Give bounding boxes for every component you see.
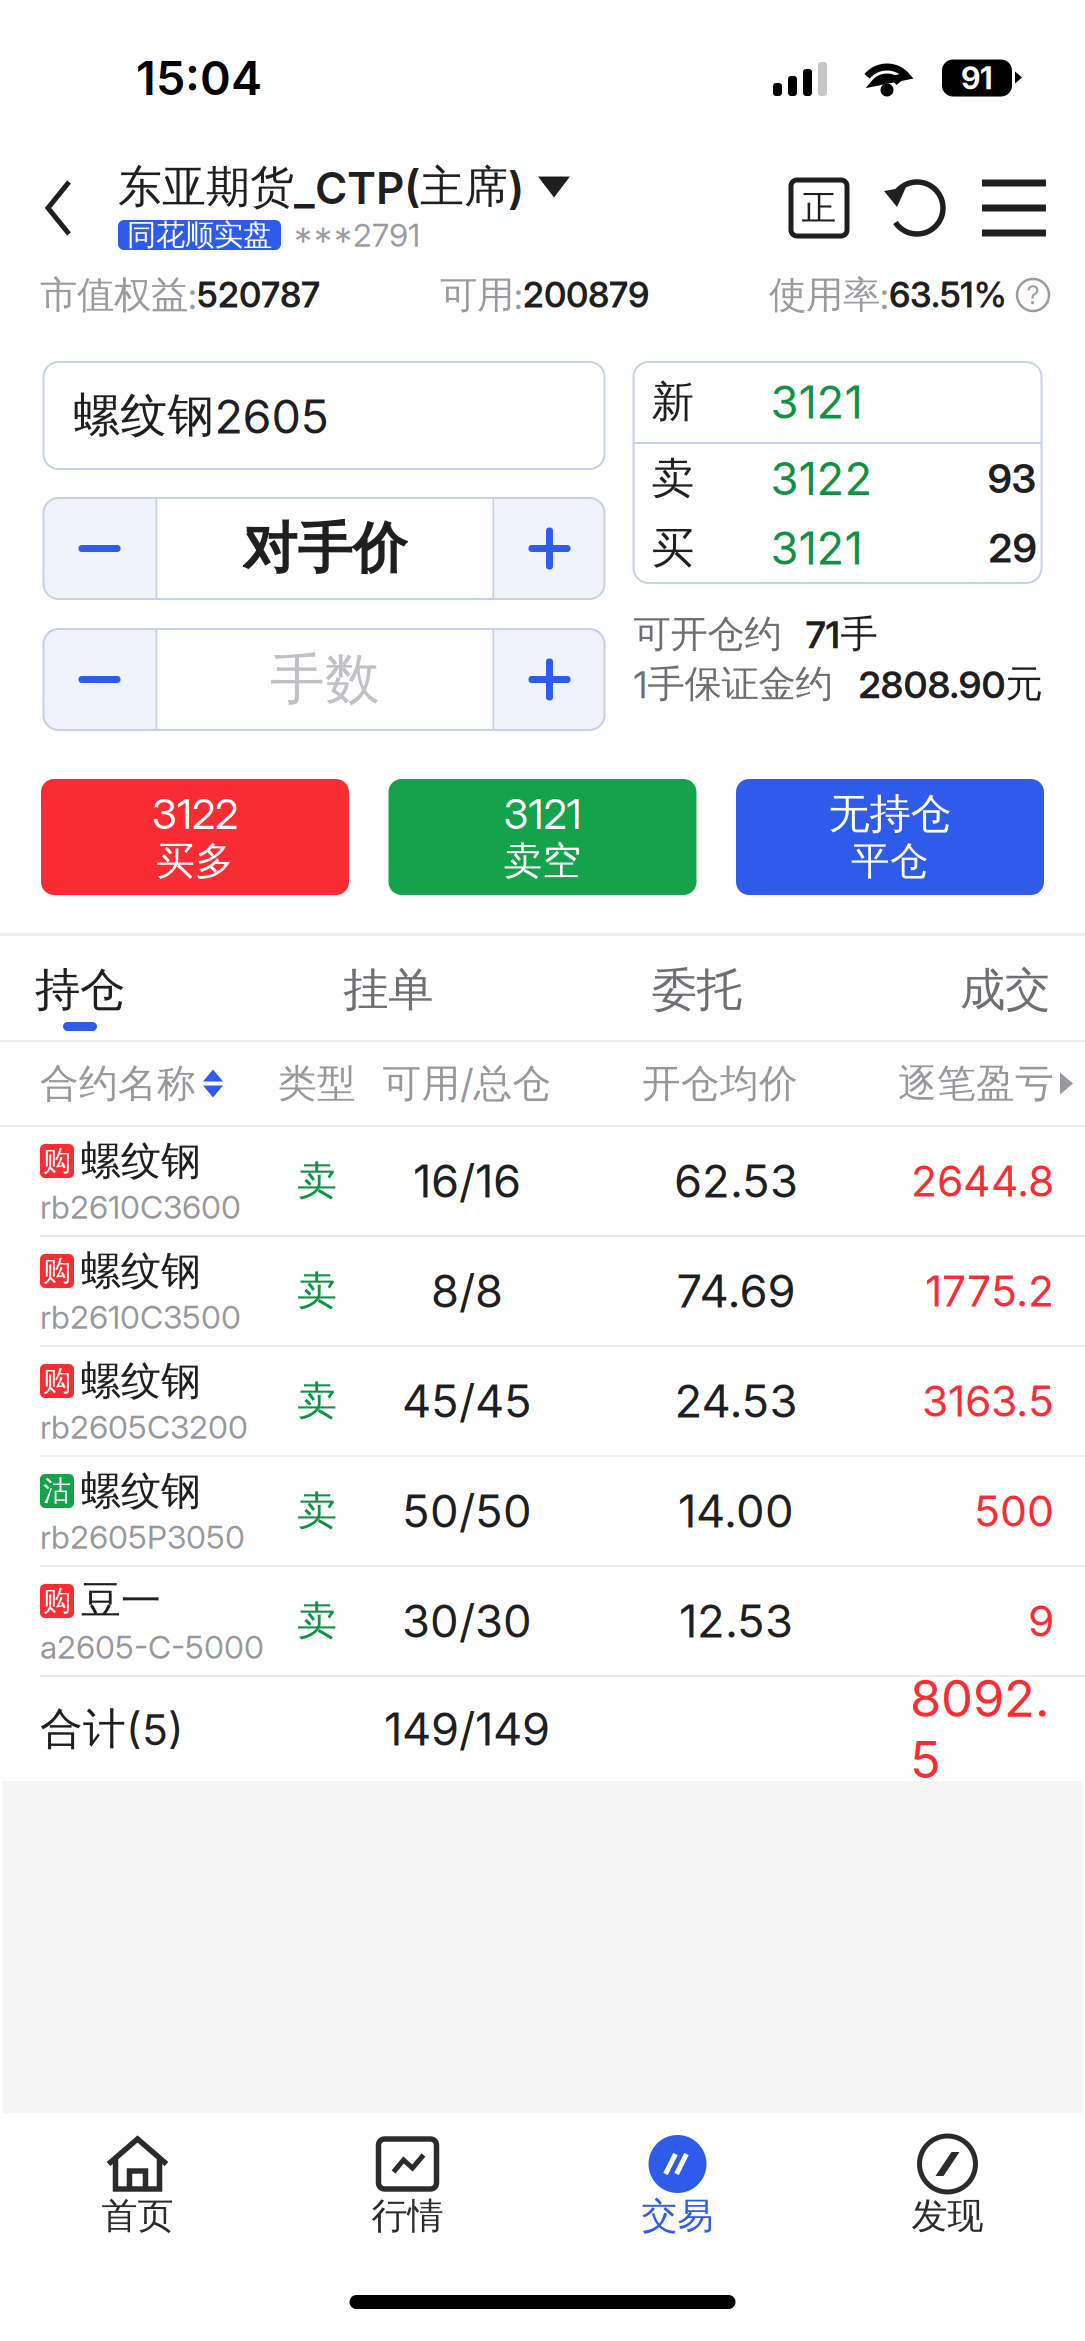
staticText: 合约名称 [40, 1059, 196, 1108]
staticText: 62.53 [674, 1154, 798, 1208]
staticText: 3163.5 [922, 1375, 1054, 1427]
staticText: 卖 [297, 1156, 337, 1206]
staticText: 首页 [101, 2193, 173, 2239]
staticText: 9 [1028, 1595, 1054, 1647]
staticText: 手数 [270, 645, 380, 714]
staticText: 8/8 [431, 1264, 503, 1318]
staticText: rb2610C3600 [40, 1188, 241, 1226]
button[interactable]: Increase [494, 498, 604, 599]
staticText: 市值权益: [40, 271, 197, 318]
button[interactable]: Decrease [43, 498, 155, 599]
button[interactable]: 发现 [812, 2113, 1082, 2265]
staticText: 买多 [156, 837, 234, 885]
staticText: 93 [987, 454, 1036, 503]
staticText: 螺纹钢 [81, 1466, 201, 1516]
staticText: rb2605C3200 [40, 1408, 248, 1446]
staticText: 16/16 [413, 1154, 521, 1208]
staticText: 可用: [440, 271, 523, 318]
staticText: 类型 [278, 1059, 356, 1108]
staticText: 挂单 [343, 961, 433, 1018]
staticText: 无持仓 [828, 788, 951, 840]
staticText: 东亚期货_CTP(主席) [118, 159, 524, 215]
staticText: 沽 [43, 1473, 71, 1509]
staticText: 螺纹钢 [81, 1136, 201, 1186]
staticText: 卖空 [503, 837, 581, 885]
staticText: 8092.5 [910, 1668, 1050, 1790]
staticText: 卖 [297, 1596, 337, 1646]
staticText: 发现 [911, 2193, 983, 2239]
staticText: 卖 [651, 452, 694, 505]
staticText: 委托 [652, 961, 742, 1018]
staticText: 14.00 [678, 1484, 794, 1538]
staticText: 200879 [523, 274, 649, 316]
staticText: 24.53 [674, 1374, 797, 1428]
staticText: 3121 [503, 789, 581, 839]
button[interactable]: 3121 [388, 779, 696, 895]
staticText: 螺纹钢2605 [73, 386, 328, 445]
button[interactable]: 无持仓 [736, 779, 1044, 895]
staticText: 3122 [152, 789, 238, 839]
staticText: 买 [651, 521, 694, 575]
staticText: 15:04 [136, 50, 262, 106]
staticText: 持仓 [35, 961, 125, 1018]
button[interactable]: 交易 [542, 2113, 812, 2265]
staticText: 行情 [371, 2193, 443, 2239]
staticText: 2808.90元 [858, 660, 1042, 707]
staticText: 购 [43, 1143, 71, 1179]
staticText: 50/50 [402, 1484, 532, 1538]
button[interactable]: Decrease [43, 629, 155, 730]
staticText: 可开仓约 [633, 610, 781, 657]
button[interactable]: Back [0, 156, 118, 260]
staticText: 45/45 [402, 1374, 532, 1428]
button[interactable]: 持仓 [3, 936, 157, 1040]
staticText: 1775.2 [925, 1265, 1054, 1317]
staticText: 30/30 [402, 1594, 532, 1648]
staticText: 12.53 [679, 1594, 793, 1648]
staticText: 购 [43, 1363, 71, 1399]
staticText: 520787 [197, 274, 320, 316]
button[interactable]: Menu [967, 156, 1061, 260]
staticText: 63.51% [889, 274, 1007, 316]
button[interactable]: Lock screen [771, 156, 867, 260]
staticText: 螺纹钢 [81, 1246, 201, 1296]
staticText: 3121 [770, 521, 862, 575]
staticText: rb2605P3050 [40, 1518, 245, 1556]
staticText: 同花顺实盘 [127, 216, 272, 253]
staticText: 合计(5) [40, 1702, 184, 1756]
button[interactable]: 委托 [620, 936, 774, 1040]
staticText: ***2791 [293, 216, 420, 254]
staticText: 新 [651, 375, 694, 429]
staticText: 豆一 [81, 1576, 161, 1626]
staticText: 149/149 [384, 1702, 550, 1756]
staticText: 71手 [805, 610, 877, 657]
staticText: 交易 [641, 2193, 713, 2239]
staticText: ? [1026, 280, 1039, 310]
staticText: 逐笔盈亏 [898, 1059, 1054, 1108]
staticText: 卖 [297, 1266, 337, 1316]
staticText: 开仓均价 [642, 1059, 798, 1108]
staticText: a2605-C-5000 [40, 1628, 264, 1666]
button[interactable]: 首页 [2, 2113, 272, 2265]
staticText: 正 [801, 186, 836, 230]
button[interactable]: 成交 [928, 936, 1082, 1040]
staticText: 3122 [770, 451, 872, 506]
staticText: 3121 [770, 375, 862, 429]
button[interactable]: Refresh [867, 156, 967, 260]
staticText: 1手保证金约 [633, 660, 832, 707]
button[interactable]: Increase [494, 629, 604, 730]
staticText: 500 [974, 1485, 1054, 1537]
staticText: 成交 [960, 961, 1050, 1018]
button[interactable]: 3122 [41, 779, 349, 895]
staticText: 74.69 [676, 1264, 795, 1318]
button[interactable]: 行情 [272, 2113, 542, 2265]
staticText: 卖 [297, 1486, 337, 1536]
staticText: 对手价 [242, 514, 407, 583]
button[interactable]: 挂单 [311, 936, 465, 1040]
staticText: 可用/总仓 [382, 1059, 551, 1108]
